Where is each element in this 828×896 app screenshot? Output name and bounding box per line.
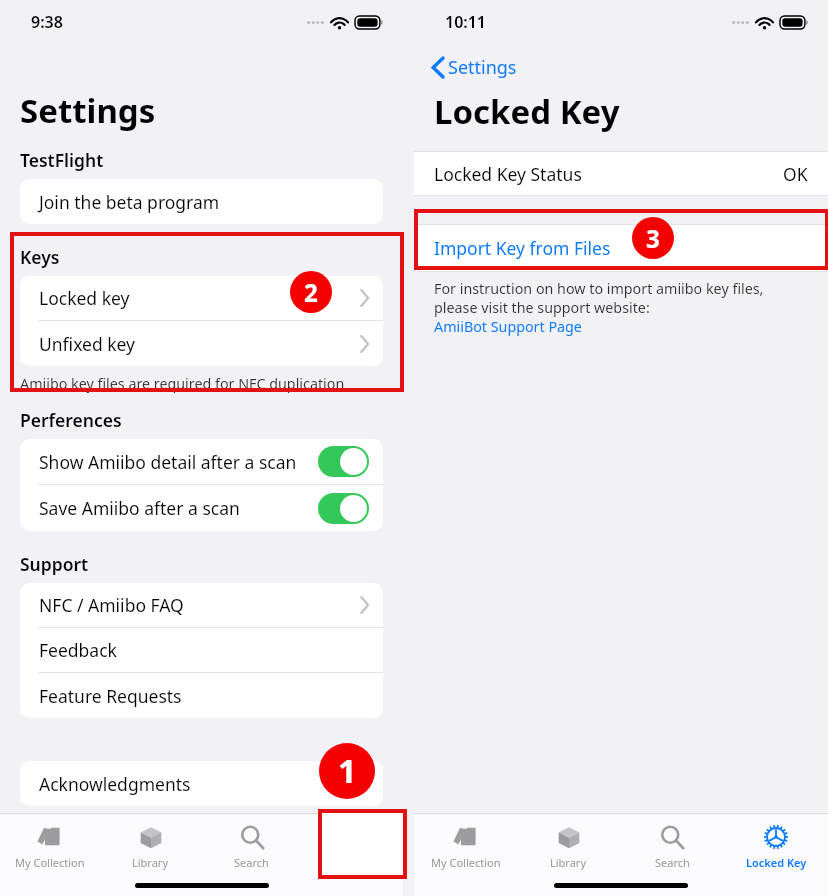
button[interactable]: Show Amiibo detail after a scan [20,439,383,484]
staticText: Library [132,855,169,870]
staticText: 9:38 [31,11,63,33]
staticText: Support [20,552,89,576]
button[interactable]: Settings [302,814,403,870]
staticText: Import Key from Files [434,236,611,260]
button[interactable]: Acknowledgments [20,761,383,806]
staticText: NFC / Amiibo FAQ [39,593,184,617]
staticText: Perferences [20,408,122,432]
staticText: Unfixed key [39,332,136,356]
staticText: 1 [338,749,357,793]
staticText: My Collection [431,855,501,870]
staticText: Show Amiibo detail after a scan [39,450,297,474]
staticText: Locked Key Status [434,162,582,186]
button[interactable]: AmiiBot Support Page [434,317,582,336]
button[interactable]: My Collection [0,814,100,870]
button[interactable]: Save Amiibo after a scan [20,485,383,531]
button[interactable]: NFC / Amiibo FAQ [20,583,383,627]
staticText: 3 [646,222,660,255]
staticText: Amiibo key files are required for NFC du… [20,374,345,393]
staticText: Library [550,855,587,870]
staticText: For instruction on how to import amiibo … [434,279,804,317]
staticText: Locked key [39,286,130,310]
button[interactable]: Locked Key Status [414,152,828,195]
staticText: My Collection [15,855,85,870]
button[interactable]: Locked Key [724,814,828,870]
staticText: TestFlight [20,148,104,172]
staticText: Locked Key [746,855,807,870]
staticText: Search [234,855,269,870]
button[interactable]: Feedback [20,628,383,672]
staticText: Acknowledgments [39,772,191,796]
button[interactable]: Settings [430,53,519,82]
button[interactable]: Locked key [20,276,383,320]
button[interactable]: Toggle on [318,446,369,477]
button[interactable]: Feature Requests [20,673,383,718]
staticText: Keys [20,245,60,269]
button[interactable]: Search [201,814,302,870]
button[interactable]: Library [517,814,620,870]
button[interactable]: My Collection [414,814,517,870]
button[interactable]: Library [100,814,201,870]
staticText: 10:11 [445,11,487,33]
staticText: Locked Key [434,89,620,134]
button[interactable]: Join the beta program [20,179,383,224]
staticText: Feature Requests [39,684,182,708]
staticText: Settings [448,55,517,80]
staticText: All products and characters depicted are… [20,814,375,833]
staticText: OK [783,162,808,186]
staticText: Search [655,855,690,870]
staticText: Feedback [39,638,117,662]
button[interactable]: Unfixed key [20,321,383,366]
button[interactable]: Toggle on [318,493,369,524]
staticText: Settings [20,88,156,133]
staticText: Save Amiibo after a scan [39,496,240,520]
staticText: 2 [304,276,318,309]
staticText: Join the beta program [39,190,220,214]
button[interactable]: Search [620,814,724,870]
button[interactable]: Import Key from Files [414,225,828,271]
